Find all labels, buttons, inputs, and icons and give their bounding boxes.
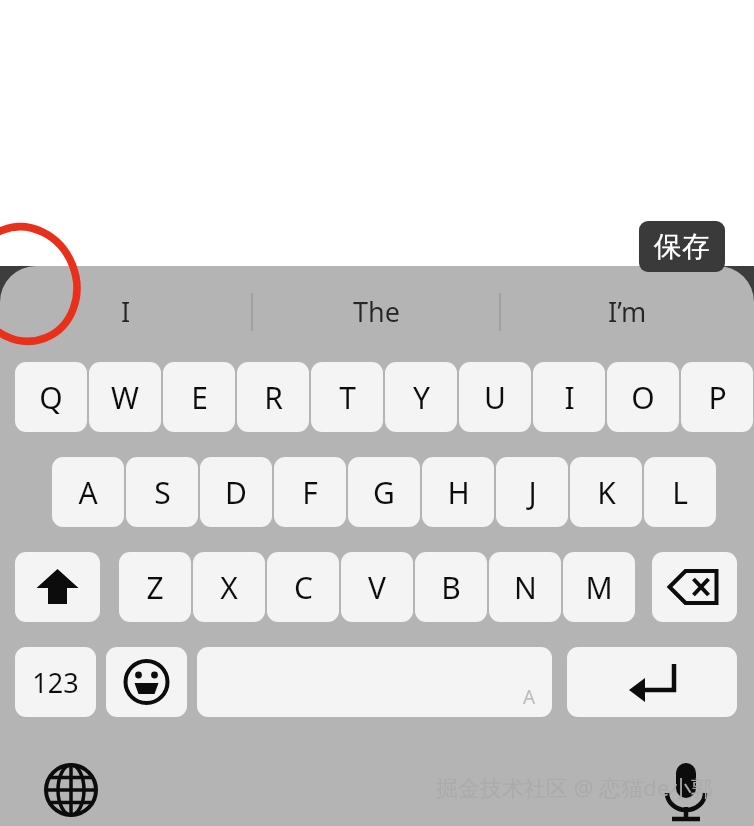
staticText: U [484,377,506,418]
staticText: N [514,567,537,608]
button[interactable]: M [563,552,635,622]
staticText: K [597,472,616,513]
button[interactable]: Space [197,647,552,717]
button[interactable]: 保存 [639,221,725,272]
button[interactable]: U [459,362,531,432]
button[interactable]: K [570,457,642,527]
button[interactable]: Z [119,552,191,622]
staticText: O [631,377,655,418]
staticText: W [111,377,139,418]
button[interactable]: Emoji [106,647,187,717]
staticText: H [447,472,470,513]
staticText: 123 [32,664,79,701]
staticText: M [585,567,613,608]
staticText: Q [39,377,63,418]
button[interactable]: 123 [15,647,96,717]
button[interactable]: Change keyboard [38,757,104,823]
button[interactable]: I [0,286,252,336]
button[interactable]: F [274,457,346,527]
staticText: X [220,567,238,608]
staticText: E [191,377,208,418]
button[interactable]: C [267,552,339,622]
staticText: F [302,472,318,513]
staticText: G [373,472,395,513]
staticText: J [528,472,537,513]
button[interactable]: Enter [567,647,737,717]
staticText: Z [146,567,164,608]
button[interactable]: B [415,552,487,622]
button[interactable]: N [489,552,561,622]
button[interactable]: O [607,362,679,432]
button[interactable]: T [311,362,383,432]
staticText: C [294,567,313,608]
button[interactable]: I’m [500,286,754,336]
button[interactable]: I [533,362,605,432]
button[interactable]: J [496,457,568,527]
staticText: P [708,377,727,418]
button[interactable]: E [163,362,235,432]
button[interactable]: X [193,552,265,622]
button[interactable]: L [644,457,716,527]
staticText: S [154,472,171,513]
staticText: A [523,684,536,710]
button[interactable]: The [252,286,500,336]
button[interactable]: Y [385,362,457,432]
staticText: R [264,377,283,418]
staticText: V [368,567,386,608]
button[interactable]: Shift [15,552,100,622]
button[interactable]: Q [15,362,87,432]
button[interactable]: D [200,457,272,527]
button[interactable]: Voice input [655,755,717,825]
staticText: I [121,293,131,330]
staticText: I [564,377,575,418]
button[interactable]: R [237,362,309,432]
staticText: D [225,472,247,513]
button[interactable]: P [681,362,753,432]
staticText: I’m [608,293,647,330]
button[interactable]: Delete [652,552,737,622]
staticText: 掘金技术社区 @ 恋猫de小郭 [436,772,714,802]
staticText: T [339,377,356,418]
button[interactable]: S [126,457,198,527]
staticText: B [441,567,461,608]
staticText: L [672,472,688,513]
staticText: Y [413,377,430,418]
button[interactable]: H [422,457,494,527]
staticText: The [353,293,400,330]
button[interactable]: A [52,457,124,527]
staticText: 保存 [654,229,710,264]
button[interactable]: W [89,362,161,432]
button[interactable]: G [348,457,420,527]
button[interactable]: V [341,552,413,622]
staticText: A [78,472,98,513]
